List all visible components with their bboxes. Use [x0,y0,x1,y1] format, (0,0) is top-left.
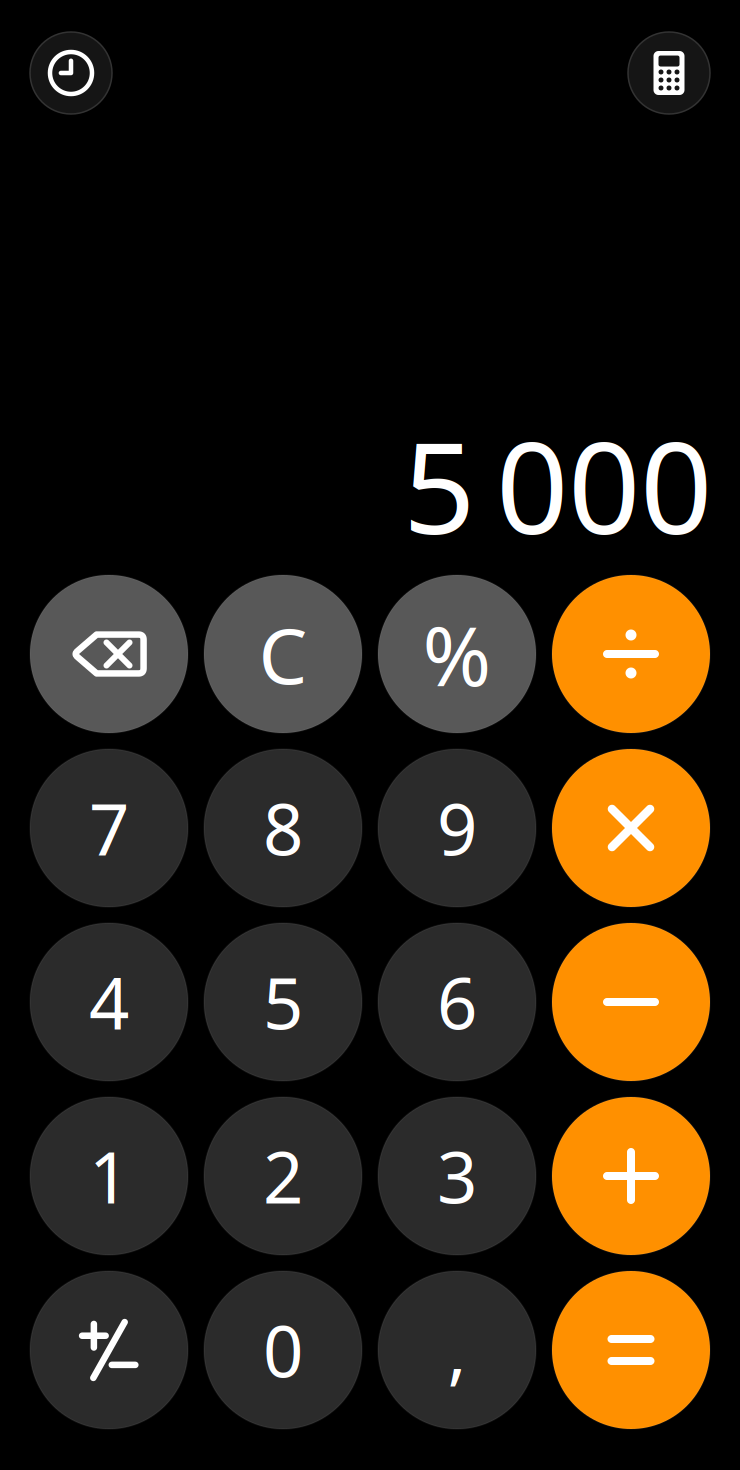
button[interactable]: Equals [552,1271,710,1429]
button[interactable]: 0 [204,1271,362,1429]
button[interactable]: % [378,575,536,733]
staticText: % [422,599,491,709]
staticText: 9 [437,781,477,875]
staticText: 1 [89,1129,129,1223]
button[interactable]: Add [552,1097,710,1255]
button[interactable]: Divide [552,575,710,733]
staticText: , [447,1303,466,1397]
button[interactable]: C [204,575,362,733]
staticText: 6 [437,955,477,1049]
button[interactable]: 6 [378,923,536,1081]
staticText: 4 [89,955,129,1049]
staticText: 0 [263,1303,303,1397]
button[interactable]: Delete [30,575,188,733]
button[interactable]: 7 [30,749,188,907]
staticText: 2 [263,1129,303,1223]
button[interactable]: 2 [204,1097,362,1255]
button[interactable]: Multiply [552,749,710,907]
button[interactable]: 1 [30,1097,188,1255]
button[interactable]: Plus minus [30,1271,188,1429]
staticText: 5 000 [403,401,712,569]
staticText: C [258,603,307,705]
button[interactable]: 4 [30,923,188,1081]
staticText: 5 [263,955,303,1049]
staticText: 3 [437,1129,477,1223]
staticText: 8 [263,781,303,875]
button[interactable]: 8 [204,749,362,907]
staticText: 7 [89,781,129,875]
button[interactable]: 9 [378,749,536,907]
button[interactable]: 5 [204,923,362,1081]
button[interactable]: , [378,1271,536,1429]
button[interactable]: Calculator [628,32,710,114]
button[interactable]: Subtract [552,923,710,1081]
button[interactable]: History [30,32,112,114]
button[interactable]: 3 [378,1097,536,1255]
